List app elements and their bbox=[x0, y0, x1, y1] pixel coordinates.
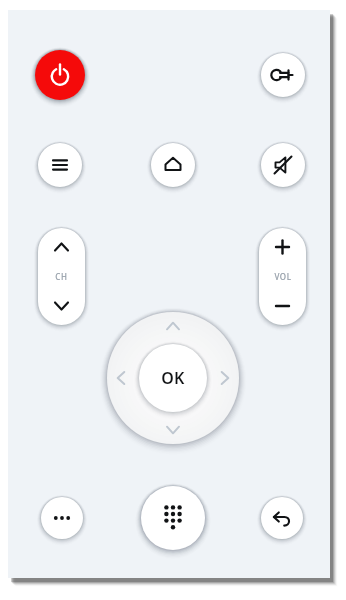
button[interactable]: Power bbox=[35, 50, 85, 100]
staticText: CH bbox=[55, 271, 68, 282]
button[interactable]: Volume up bbox=[259, 228, 306, 268]
button[interactable]: OK bbox=[139, 344, 207, 412]
button[interactable]: Home bbox=[151, 143, 195, 187]
button[interactable]: Channel up bbox=[38, 228, 85, 268]
button[interactable]: More options bbox=[41, 497, 83, 539]
button[interactable]: Volume down bbox=[259, 285, 306, 325]
button[interactable]: Right bbox=[197, 357, 239, 399]
button[interactable]: Down bbox=[152, 409, 194, 451]
button[interactable]: Mute bbox=[261, 143, 305, 187]
button[interactable]: Left bbox=[107, 357, 149, 399]
staticText: VOL bbox=[274, 271, 292, 282]
button[interactable]: Up bbox=[152, 305, 194, 347]
button[interactable]: Dial pad bbox=[141, 486, 205, 550]
button[interactable]: Menu bbox=[38, 143, 82, 187]
staticText: OK bbox=[161, 367, 185, 389]
button[interactable]: Channel down bbox=[38, 285, 85, 325]
button[interactable]: Back bbox=[261, 497, 303, 539]
button[interactable]: Input source bbox=[261, 53, 305, 97]
